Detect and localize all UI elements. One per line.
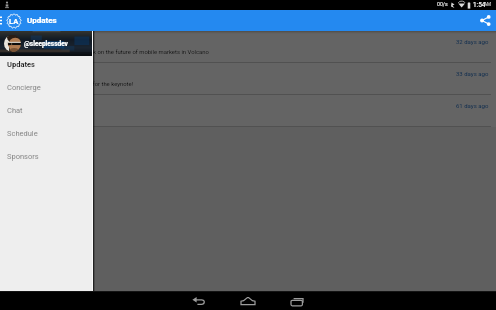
staticText: Everyone head to the main stage for the … bbox=[6, 81, 134, 88]
staticText: Concierge bbox=[7, 83, 41, 92]
button[interactable]: Concierge bbox=[0, 76, 93, 99]
staticText: Schedule bbox=[7, 129, 38, 138]
button[interactable]: Recent apps bbox=[275, 291, 321, 310]
staticText: Chat bbox=[7, 106, 23, 115]
button[interactable]: Home bbox=[225, 291, 271, 310]
staticText: 32 days ago bbox=[456, 38, 489, 45]
staticText: Updates bbox=[27, 16, 57, 25]
button[interactable]: Sponsors bbox=[0, 145, 93, 168]
staticText: 1:54 bbox=[473, 1, 486, 9]
staticText: 33 days ago bbox=[456, 70, 489, 77]
staticText: 00/s bbox=[437, 1, 448, 7]
staticText: LA bbox=[9, 17, 19, 26]
staticText: Sponsors bbox=[7, 152, 39, 161]
button[interactable]: Back bbox=[176, 291, 222, 310]
staticText: Remember to attend the panel talk on the… bbox=[6, 49, 209, 56]
button[interactable]: Updates bbox=[0, 53, 93, 76]
button[interactable]: Chat bbox=[0, 99, 93, 122]
staticText: AM bbox=[484, 2, 492, 7]
staticText: @sleeplessdev bbox=[24, 40, 68, 48]
button[interactable]: Schedule bbox=[0, 122, 93, 145]
staticText: 61 days ago bbox=[456, 102, 489, 109]
staticText: Updates bbox=[7, 60, 35, 69]
button[interactable]: Share bbox=[474, 10, 496, 31]
button[interactable]: Open navigation drawer bbox=[0, 10, 3, 31]
